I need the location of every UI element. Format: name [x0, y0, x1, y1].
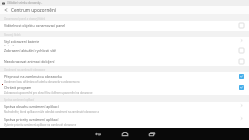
- staticText: Centrum upozornění: [11, 7, 56, 13]
- staticText: Oznamovací panel a stavový řádek: [4, 17, 46, 20]
- staticText: Styl zobrazení baterie: [4, 39, 40, 44]
- button[interactable]: Chránit program: [0, 83, 249, 95]
- staticText: Vyberte prioritu oznámení aplikace na za…: [4, 123, 77, 127]
- button[interactable]: Zobrazení aktuální rychlosti sítě: [234, 46, 249, 57]
- staticText: Nezobrazovat animaci dobíjení: [4, 59, 55, 64]
- staticText: Ukládání snímku obrazovky…: [7, 1, 43, 5]
- staticText: Zobrazení aktuální rychlosti sítě: [4, 48, 56, 53]
- button[interactable]: Back: [0, 6, 11, 14]
- button[interactable]: Přepnout na zamknutou obrazovku: [0, 72, 249, 83]
- button[interactable]: Nezobrazovat animaci dobíjení: [234, 57, 249, 66]
- staticText: Správa oznámení aplikací: [4, 98, 35, 101]
- staticText: Chránit program: [4, 85, 32, 90]
- staticText: Přepnout na zamknutou obrazovku: [4, 74, 62, 79]
- staticText: Zobrazovat upozornění pro okno filtru i …: [4, 91, 93, 95]
- button[interactable]: Přepnout na zamknutou obrazovku: [234, 72, 249, 83]
- staticText: Stavový řádek: [4, 33, 21, 36]
- button[interactable]: Zobrazení aktuální rychlosti sítě: [0, 46, 249, 57]
- button[interactable]: Back: [95, 128, 101, 140]
- button[interactable]: Home: [122, 128, 128, 140]
- staticText: Oznámení jsou přijímána při zámku obrazo…: [4, 80, 80, 83]
- button[interactable]: Správa priority oznámení aplikací: [0, 115, 249, 128]
- staticText: Viditelnost objektu oznamovací panel: [4, 23, 66, 28]
- button[interactable]: Viditelnost objektu oznamovací panel: [0, 21, 249, 31]
- button[interactable]: Styl zobrazení baterie: [0, 37, 249, 46]
- staticText: Oznámení na zamknuté obrazovce: [4, 68, 46, 71]
- staticText: Správa priority oznámení aplikací: [4, 117, 59, 122]
- button[interactable]: Viditelnost objektu oznamovací panel: [234, 21, 249, 31]
- staticText: Správa obsahu oznámení aplikací: [4, 104, 59, 109]
- button[interactable]: Chránit program: [234, 83, 249, 95]
- button[interactable]: Nezobrazovat animaci dobíjení: [0, 57, 249, 66]
- staticText: Rozhodněte, která aplikace může odesílat…: [4, 110, 99, 114]
- staticText: Styl vedle: [4, 45, 16, 46]
- button[interactable]: Recents: [149, 128, 155, 140]
- button[interactable]: Správa obsahu oznámení aplikací: [0, 102, 249, 115]
